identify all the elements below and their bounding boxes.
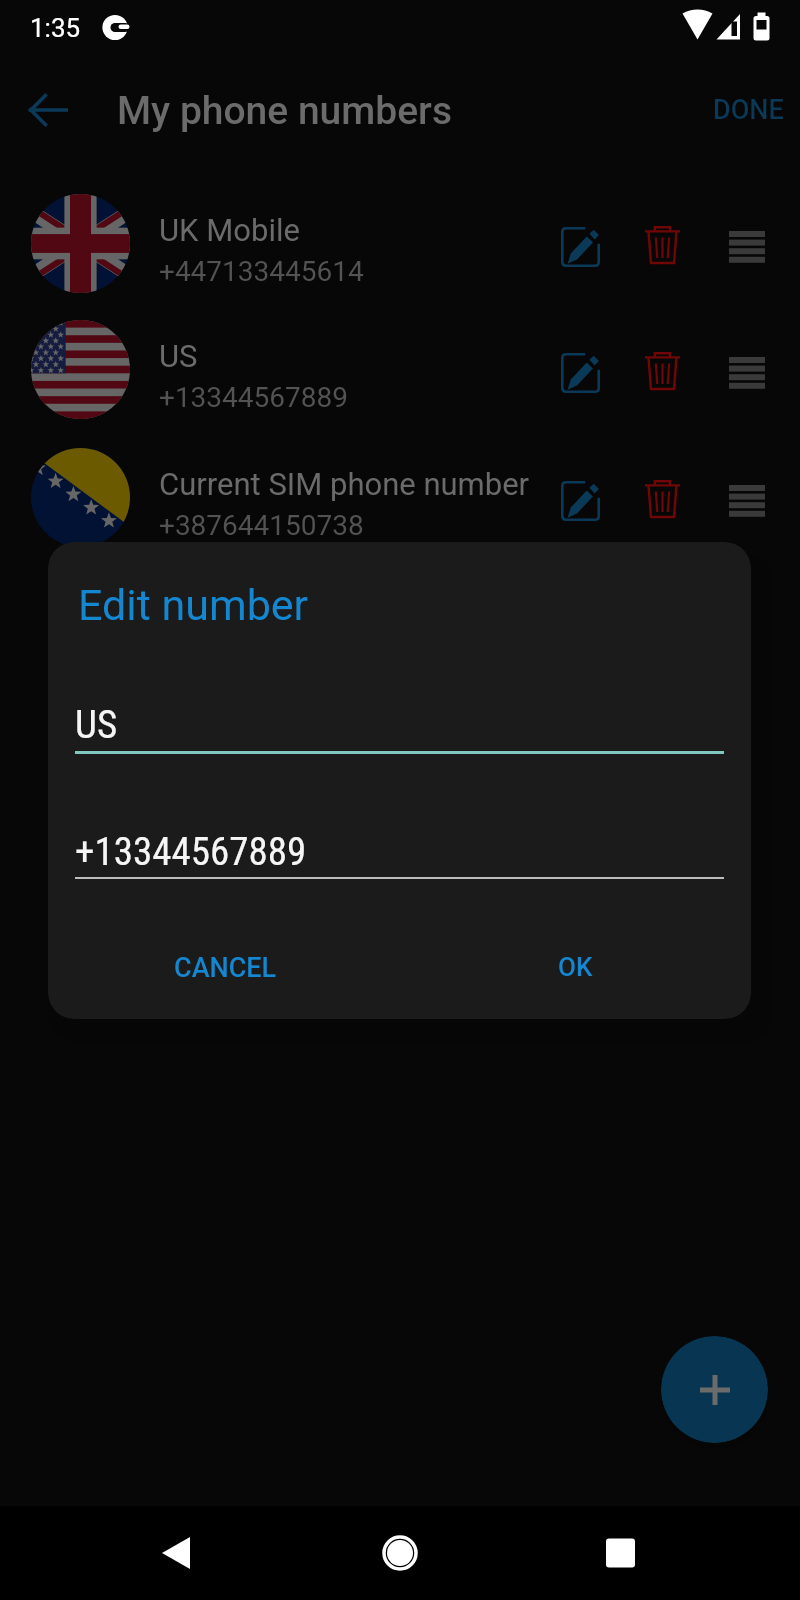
staticText: +13344567889	[159, 381, 348, 414]
button[interactable]: Reorder	[709, 334, 785, 410]
button[interactable]: Recents	[581, 1513, 661, 1593]
button[interactable]: Edit	[542, 463, 618, 539]
staticText: US	[75, 702, 118, 748]
button[interactable]: Current SIM phone number	[0, 433, 800, 561]
staticText: Edit number	[78, 580, 309, 630]
staticText: US	[159, 338, 198, 374]
staticText: UK Mobile	[159, 212, 300, 248]
button[interactable]: OK	[534, 934, 617, 1000]
button[interactable]: Edit	[542, 335, 618, 411]
button[interactable]: Back	[136, 1513, 216, 1593]
button[interactable]: Back	[20, 82, 76, 138]
staticText: 1:35	[30, 13, 81, 43]
staticText: +387644150738	[159, 509, 364, 542]
button[interactable]: DONE	[693, 74, 800, 146]
staticText: +447133445614	[159, 255, 364, 288]
button[interactable]: CANCEL	[150, 934, 301, 1002]
button[interactable]: UK Mobile	[0, 179, 800, 307]
button[interactable]: Delete	[624, 460, 700, 536]
button[interactable]: Delete	[624, 206, 700, 282]
staticText: My phone numbers	[117, 88, 452, 134]
button[interactable]: Reorder	[709, 208, 785, 284]
button[interactable]: US	[0, 305, 800, 433]
staticText: CANCEL	[174, 952, 277, 984]
staticText: DONE	[713, 94, 784, 126]
button[interactable]: Delete	[624, 332, 700, 408]
button[interactable]: Reorder	[709, 462, 785, 538]
button[interactable]: Add	[661, 1336, 768, 1443]
staticText: OK	[558, 952, 593, 982]
button[interactable]: Home	[360, 1513, 440, 1593]
staticText: +13344567889	[75, 829, 307, 875]
button[interactable]: Edit	[542, 209, 618, 285]
staticText: Current SIM phone number	[159, 466, 530, 502]
